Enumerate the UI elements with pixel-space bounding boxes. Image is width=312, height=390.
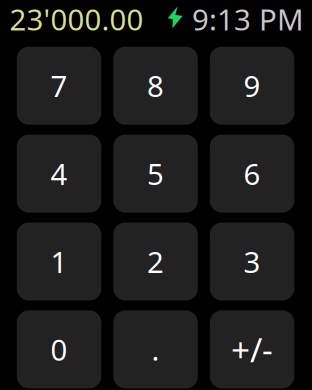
staticText: 5 <box>147 154 164 193</box>
staticText: +/- <box>231 327 273 372</box>
staticText: 6 <box>244 154 261 193</box>
button[interactable]: 0 <box>17 310 101 388</box>
staticText: 23'000.00 <box>9 0 143 38</box>
staticText: 8 <box>147 66 164 105</box>
button[interactable]: 3 <box>210 222 294 300</box>
button[interactable]: . <box>113 310 198 388</box>
staticText: 2 <box>147 242 164 281</box>
staticText: 9:13 PM <box>192 0 304 38</box>
staticText: 0 <box>50 330 67 369</box>
staticText: 3 <box>244 242 261 281</box>
button[interactable]: 2 <box>113 222 198 300</box>
staticText: 4 <box>50 154 67 193</box>
staticText: . <box>152 330 160 369</box>
staticText: 9 <box>244 66 261 105</box>
button[interactable]: 6 <box>210 135 294 213</box>
button[interactable]: 9 <box>210 47 294 125</box>
staticText: 7 <box>50 66 67 105</box>
staticText: 1 <box>50 242 67 281</box>
button[interactable]: 8 <box>113 47 198 125</box>
button[interactable]: +/- <box>210 310 294 388</box>
button[interactable]: 4 <box>17 135 101 213</box>
button[interactable]: 1 <box>17 222 101 300</box>
button[interactable]: 7 <box>17 47 101 125</box>
button[interactable]: 5 <box>113 135 198 213</box>
